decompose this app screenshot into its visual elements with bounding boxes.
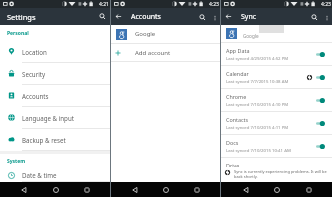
staticText: Contacts [226, 116, 249, 123]
button[interactable]: Accounts [0, 85, 110, 107]
staticText: Sync [241, 12, 257, 22]
button[interactable]: Date & time [0, 168, 110, 182]
staticText: Docs [226, 139, 239, 146]
staticText: System [7, 158, 26, 165]
staticText: Settings [7, 12, 36, 22]
staticText: Accounts [131, 12, 161, 22]
staticText: Calendar [226, 70, 249, 77]
staticText: Drive [226, 162, 240, 169]
staticText: App Data [226, 47, 250, 54]
staticText: Date & time [22, 171, 57, 179]
button[interactable]: Backup & reset [0, 129, 110, 151]
staticText: Security [22, 70, 46, 78]
button[interactable]: Recents [79, 182, 94, 197]
button[interactable]: Security [0, 63, 110, 85]
button[interactable]: Recents [301, 182, 316, 197]
staticText: Chrome [226, 93, 247, 100]
staticText: Last synced 4/29/2015 4:52 PM [226, 55, 289, 61]
staticText: Google [135, 30, 156, 38]
button[interactable]: Recents [189, 182, 204, 197]
button[interactable]: Home [269, 182, 284, 197]
staticText: Location [22, 48, 47, 56]
staticText: Last synced 7/10/2015 10:41 AM [226, 147, 291, 153]
button[interactable]: Search [307, 10, 321, 24]
button[interactable]: Drive [221, 158, 332, 180]
button[interactable]: App Data [221, 43, 332, 65]
button[interactable]: Search [95, 9, 110, 24]
staticText: Google [243, 33, 259, 39]
staticText: 4:23 [321, 1, 331, 8]
button[interactable]: Back [127, 182, 142, 197]
staticText: Backup & reset [22, 136, 66, 144]
staticText: Sync is currently experiencing problems.… [234, 169, 327, 179]
staticText: Accounts [22, 92, 49, 100]
staticText: 4:23 [209, 1, 219, 8]
button[interactable]: Add account [111, 44, 220, 61]
button[interactable]: Docs [221, 135, 332, 157]
staticText: Last synced 7/7/2015 10:38 AM [226, 78, 289, 84]
button[interactable]: Toggle Calendar sync [314, 72, 326, 82]
button[interactable]: Toggle App Data sync [314, 49, 326, 59]
button[interactable]: Home [48, 182, 63, 197]
button[interactable]: Navigate up [221, 9, 236, 24]
button[interactable]: Location [0, 41, 110, 63]
button[interactable]: Back [16, 182, 31, 197]
button[interactable]: Navigate up [111, 9, 126, 24]
button[interactable]: Language & input [0, 107, 110, 129]
button[interactable]: Home [158, 182, 173, 197]
button[interactable]: Search [195, 10, 209, 24]
button[interactable]: Toggle Contacts sync [314, 118, 326, 128]
staticText: Add account [135, 49, 171, 57]
staticText: Language & input [22, 114, 74, 122]
staticText: Last synced 7/10/2015 4:10 PM [226, 101, 289, 107]
button[interactable]: Back [238, 182, 253, 197]
button[interactable]: Google [111, 25, 220, 43]
staticText: 4:21 [99, 1, 109, 8]
button[interactable]: Toggle Docs sync [314, 141, 326, 151]
button[interactable]: Chrome [221, 89, 332, 111]
button[interactable]: More options [209, 12, 220, 23]
button[interactable]: Toggle Chrome sync [314, 95, 326, 105]
staticText: Personal [7, 30, 29, 37]
button[interactable]: Contacts [221, 112, 332, 134]
button[interactable]: Toggle Drive sync [314, 164, 326, 174]
button[interactable]: Calendar [221, 66, 332, 88]
staticText: Last synced 7/10/2015 10:41 AM [226, 170, 291, 176]
button[interactable]: More options [321, 12, 332, 23]
staticText: Last synced 7/10/2015 4:11 PM [226, 124, 289, 130]
